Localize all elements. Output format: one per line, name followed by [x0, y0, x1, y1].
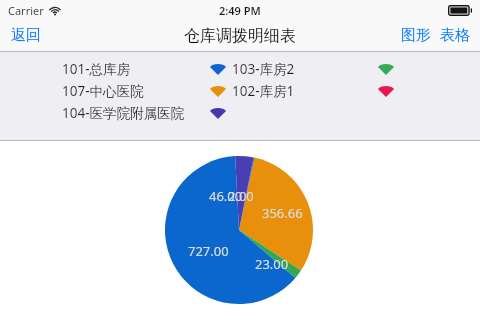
- staticText: 103-库房2: [232, 60, 295, 78]
- staticText: 图形: [401, 26, 431, 45]
- staticText: 表格: [440, 26, 470, 45]
- button[interactable]: 表格: [437, 20, 473, 51]
- staticText: 2:49 PM: [219, 3, 261, 18]
- staticText: Carrier: [8, 3, 44, 18]
- staticText: 返回: [11, 26, 41, 45]
- button[interactable]: 返回: [0, 20, 52, 51]
- staticText: 仓库调拨明细表: [184, 26, 296, 46]
- staticText: 356.66: [262, 204, 303, 222]
- staticText: 727.00: [188, 242, 229, 260]
- staticText: 102-库房1: [232, 82, 295, 100]
- staticText: 2.00: [228, 187, 254, 205]
- staticText: 101-总库房: [62, 60, 131, 78]
- button[interactable]: 103-库房2: [232, 60, 394, 78]
- staticText: 107-中心医院: [62, 82, 144, 100]
- button[interactable]: 图形: [398, 20, 434, 51]
- staticText: 23.00: [255, 255, 289, 273]
- button[interactable]: 101-总库房: [62, 60, 226, 78]
- staticText: 104-医学院附属医院: [62, 104, 185, 122]
- button[interactable]: 104-医学院附属医院: [62, 104, 226, 122]
- button[interactable]: 102-库房1: [232, 82, 394, 100]
- button[interactable]: 107-中心医院: [62, 82, 226, 100]
- staticText: 46.00: [209, 187, 243, 205]
